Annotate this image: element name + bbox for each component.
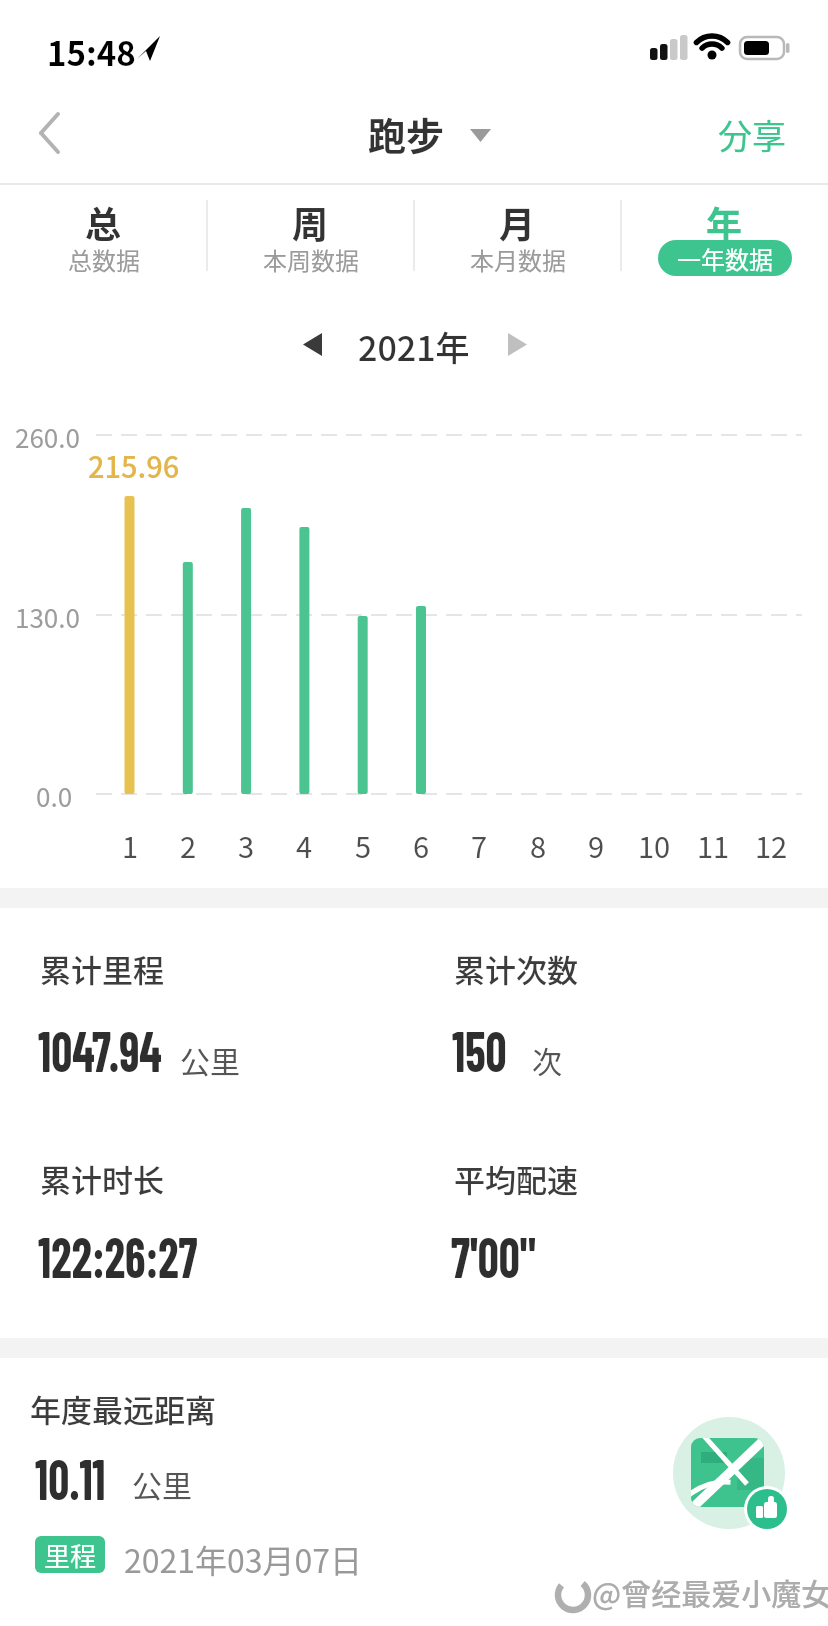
button[interactable]: 年 bbox=[621, 186, 828, 290]
staticText: 215.96 bbox=[88, 444, 180, 486]
staticText: 11 bbox=[697, 824, 730, 866]
staticText: 本月数据 bbox=[470, 242, 566, 277]
staticText: 跑步 bbox=[368, 106, 445, 161]
staticText: 本周数据 bbox=[263, 242, 359, 277]
staticText: 7 bbox=[471, 824, 488, 866]
staticText: 年度最远距离 bbox=[30, 1386, 216, 1431]
staticText: 3 bbox=[238, 824, 255, 866]
button[interactable]: 周 bbox=[207, 186, 414, 290]
button[interactable]: 里程 bbox=[35, 1536, 105, 1573]
staticText: 122:26:27 bbox=[38, 1220, 198, 1290]
staticText: 公里 bbox=[132, 1462, 192, 1505]
staticText: 2021年 bbox=[358, 322, 470, 371]
staticText: 260.0 bbox=[15, 418, 80, 456]
button[interactable]: 总 bbox=[0, 186, 207, 290]
staticText: 月 bbox=[499, 196, 536, 248]
staticText: 分享 bbox=[718, 110, 786, 159]
staticText: 累计次数 bbox=[454, 946, 578, 991]
button[interactable] bbox=[665, 1410, 793, 1538]
staticText: 总数据 bbox=[68, 242, 140, 277]
staticText: 4 bbox=[296, 824, 313, 866]
staticText: 15:48 bbox=[47, 28, 136, 76]
button[interactable]: 月 bbox=[414, 186, 621, 290]
staticText: 周 bbox=[292, 196, 329, 248]
staticText: 0.0 bbox=[36, 777, 73, 815]
staticText: 6 bbox=[413, 824, 430, 866]
staticText: 公里 bbox=[180, 1038, 240, 1081]
staticText: 次 bbox=[532, 1038, 562, 1081]
staticText: 年 bbox=[706, 196, 743, 248]
staticText: 5 bbox=[355, 824, 372, 866]
staticText: 10 bbox=[638, 824, 671, 866]
staticText: 1 bbox=[122, 824, 139, 866]
staticText: 130.0 bbox=[15, 598, 80, 636]
button[interactable] bbox=[700, 95, 808, 165]
button[interactable] bbox=[20, 95, 90, 170]
staticText: 7'00" bbox=[451, 1220, 537, 1290]
button[interactable] bbox=[495, 320, 541, 368]
staticText: 12 bbox=[755, 824, 788, 866]
staticText: 150 bbox=[452, 1014, 507, 1084]
staticText: 一年数据 bbox=[677, 241, 773, 276]
staticText: 累计时长 bbox=[40, 1156, 164, 1201]
staticText: 2021年03月07日 bbox=[124, 1536, 363, 1582]
staticText: @曾经最爱小魔女 bbox=[592, 1570, 828, 1613]
staticText: 平均配速 bbox=[454, 1156, 578, 1201]
staticText: 1047.94 bbox=[38, 1014, 162, 1084]
staticText: 里程 bbox=[44, 1536, 97, 1573]
staticText: 累计里程 bbox=[40, 946, 164, 991]
staticText: 总 bbox=[85, 196, 122, 248]
staticText: 9 bbox=[588, 824, 605, 866]
staticText: 10.11 bbox=[35, 1442, 106, 1512]
staticText: 2 bbox=[180, 824, 197, 866]
staticText: 8 bbox=[530, 824, 547, 866]
button[interactable] bbox=[290, 320, 336, 368]
